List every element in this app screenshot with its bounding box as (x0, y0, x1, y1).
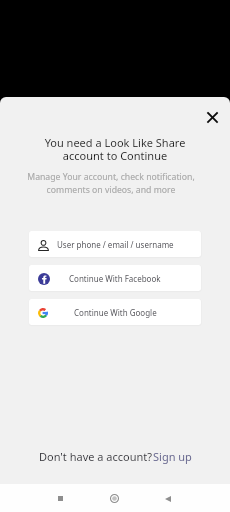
button[interactable]: User phone / email / username (29, 231, 201, 257)
button[interactable]: Back (155, 486, 180, 511)
staticText: Continue With Google (74, 307, 157, 318)
button[interactable]: Continue With Google (29, 299, 201, 325)
staticText: You need a Look Like Share account to Co… (0, 135, 230, 163)
staticText: Continue With Facebook (69, 273, 161, 284)
button[interactable]: Close (203, 108, 221, 126)
staticText: Sign up (153, 449, 192, 464)
staticText: Manage Your account, check notification,… (0, 171, 226, 195)
staticText: User phone / email / username (57, 239, 174, 250)
staticText: Don't have a account? (39, 449, 153, 464)
button[interactable]: Recents (48, 486, 73, 511)
button[interactable]: Sign up (153, 449, 192, 464)
button[interactable]: Continue With Facebook (29, 265, 201, 291)
button[interactable]: Home (102, 486, 127, 511)
